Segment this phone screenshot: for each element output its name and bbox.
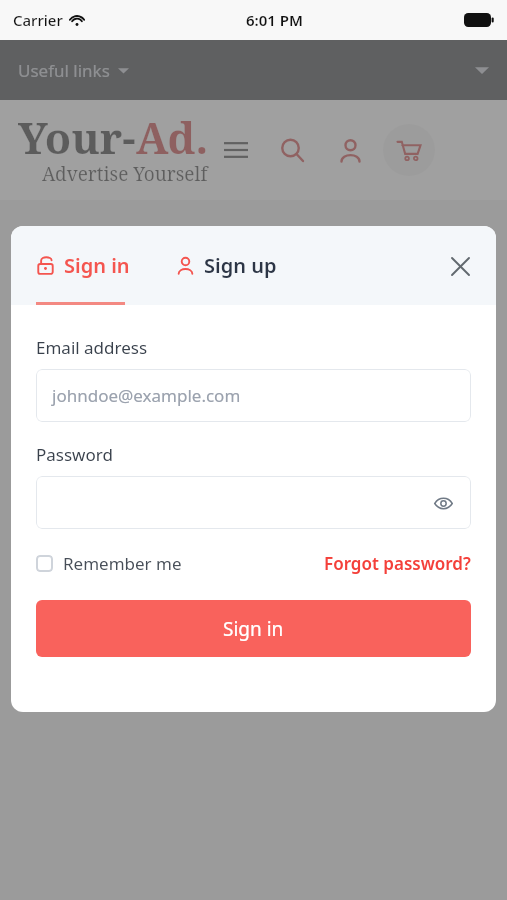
button[interactable]: Forgot password? xyxy=(324,548,471,579)
staticText: Useful links xyxy=(18,59,110,82)
button[interactable]: HOUSE & HOME xyxy=(42,228,465,280)
button[interactable]: Menu xyxy=(219,133,253,167)
staticText: Sign in xyxy=(223,616,284,642)
button[interactable]: Search xyxy=(275,133,309,167)
staticText: 6:01 PM xyxy=(246,10,303,30)
staticText: Forgot password? xyxy=(324,552,471,575)
button[interactable]: Useful links xyxy=(0,40,507,100)
staticText: Sign in xyxy=(64,252,130,279)
staticText: Email address xyxy=(36,336,148,359)
button[interactable]: johndoe@example.com xyxy=(36,369,471,422)
staticText: Advertise Yourself xyxy=(42,161,208,187)
button[interactable]: Remember me xyxy=(36,548,182,579)
staticText: Your- xyxy=(18,108,136,167)
staticText: johndoe@example.com xyxy=(52,384,241,407)
button[interactable]: Show password xyxy=(36,476,471,529)
staticText: ART & COLLECTIBLES xyxy=(52,387,227,409)
button[interactable]: Show password xyxy=(431,491,455,515)
staticText: Carrier xyxy=(13,10,63,30)
button[interactable]: Sign in xyxy=(36,600,471,657)
button[interactable]: Sign in xyxy=(36,244,130,287)
button[interactable]: Sign up xyxy=(176,244,277,287)
staticText: Password xyxy=(36,443,113,466)
staticText: HOUSE & HOME xyxy=(52,243,184,265)
button[interactable]: ART & COLLECTIBLES xyxy=(42,372,465,424)
staticText: Sign up xyxy=(204,252,277,279)
button[interactable]: Cart xyxy=(383,124,435,176)
button[interactable]: Account xyxy=(333,133,367,167)
button[interactable]: Close xyxy=(442,248,478,284)
staticText: Remember me xyxy=(63,552,182,575)
button[interactable]: VINTAGE xyxy=(42,300,465,352)
button[interactable]: Your- xyxy=(18,108,209,193)
staticText: Ad. xyxy=(136,108,209,167)
